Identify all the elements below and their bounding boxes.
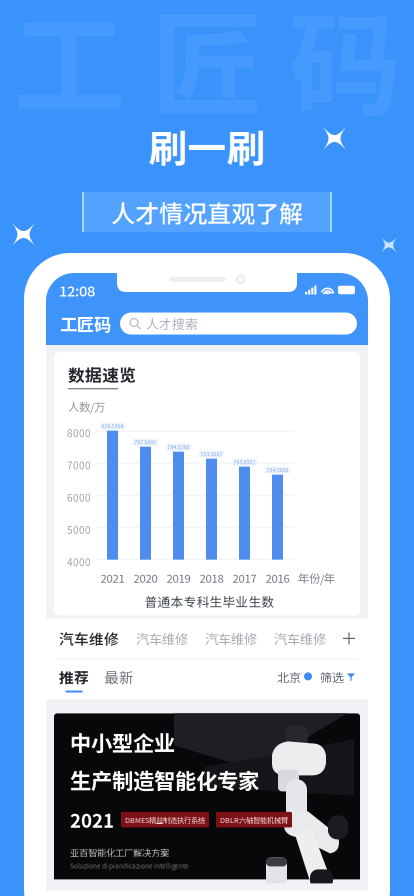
staticText: 2017 <box>232 570 256 586</box>
staticText: 795.8002 <box>233 459 255 466</box>
button[interactable]: 筛选 <box>312 668 355 691</box>
staticText: 汽车维修 <box>274 629 326 648</box>
staticText: 人才搜索 <box>146 314 198 333</box>
staticText: 人数/万 <box>68 398 105 415</box>
button[interactable]: 汽车维修 <box>59 628 119 649</box>
staticText: 2016 <box>265 570 289 586</box>
staticText: 5000 <box>67 522 91 537</box>
staticText: 工匠码 <box>13 0 401 138</box>
staticText: 工匠码 <box>60 311 111 336</box>
button[interactable]: 人才搜索 <box>120 312 357 334</box>
button[interactable]: 汽车维修 <box>136 629 188 648</box>
staticText: 754.2000 <box>266 467 288 474</box>
staticText: 亚百智能化工厂解决方案 <box>70 846 169 859</box>
button[interactable]: 推荐 <box>59 666 89 692</box>
staticText: 人才情况直观了解 <box>111 195 303 229</box>
staticText: 2021 <box>70 806 114 833</box>
staticText: 年份/年 <box>298 570 335 586</box>
staticText: 12:08 <box>59 279 95 301</box>
staticText: 2019 <box>166 570 190 586</box>
staticText: 最新 <box>104 666 134 687</box>
staticText: 2020 <box>133 570 157 586</box>
staticText: 筛选 <box>320 668 344 686</box>
staticText: 826.5364 <box>101 423 123 430</box>
staticText: 北京 <box>277 668 301 686</box>
staticText: 753.3087 <box>200 451 222 458</box>
staticText: 汽车维修 <box>136 629 188 648</box>
staticText: 数据速览 <box>68 362 136 386</box>
staticText: 784.5286 <box>167 444 189 451</box>
staticText: 6000 <box>67 490 91 505</box>
staticText: 4000 <box>67 555 91 569</box>
button[interactable]: 最新 <box>89 666 134 692</box>
staticText: DBLR六轴智能机械臂 <box>220 814 288 825</box>
button[interactable]: 汽车维修 <box>274 629 326 648</box>
staticText: 普通本专科生毕业生数 <box>144 592 274 610</box>
button[interactable]: 添加分类 <box>343 632 355 644</box>
staticText: 中小型企业 <box>70 726 175 757</box>
button[interactable]: 北京 <box>277 668 312 691</box>
staticText: 推荐 <box>59 666 89 687</box>
staticText: 2021 <box>100 570 124 586</box>
staticText: 8000 <box>67 426 91 440</box>
staticText: DBMES精益制造执行系统 <box>125 814 205 825</box>
staticText: 汽车维修 <box>59 628 119 649</box>
staticText: 7000 <box>67 458 91 472</box>
staticText: 生产制造智能化专家 <box>70 764 259 795</box>
staticText: 汽车维修 <box>205 629 257 648</box>
staticText: 787.5001 <box>134 439 156 446</box>
staticText: Soluzione di pianificazione intelligente <box>70 861 189 870</box>
button[interactable]: 汽车维修 <box>205 629 257 648</box>
staticText: 2018 <box>199 570 223 586</box>
staticText: 刷一刷 <box>148 118 265 174</box>
